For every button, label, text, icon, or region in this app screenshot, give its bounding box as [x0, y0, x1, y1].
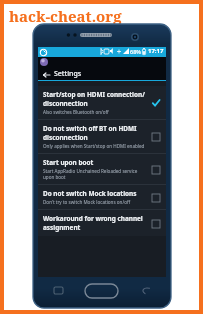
staticText: Settings — [54, 69, 82, 79]
button[interactable]: Checked — [149, 96, 162, 109]
button[interactable]: Unchecked — [149, 191, 162, 204]
button[interactable]: Start upon boot — [38, 154, 166, 184]
button[interactable]: Recent apps — [49, 284, 67, 297]
staticText: hack-cheat.org — [9, 6, 122, 26]
staticText: Only applies when Start/stop on HDMI ena… — [43, 143, 145, 149]
button[interactable]: Unchecked — [149, 217, 162, 230]
button[interactable]: Workaround for wrong channel assignment — [38, 210, 166, 236]
button[interactable]: Unchecked — [149, 163, 162, 176]
staticText: Start/stop on HDMI connection/disconnect… — [43, 90, 145, 108]
button[interactable]: Navigate up — [41, 69, 52, 80]
button[interactable]: Unchecked — [149, 130, 162, 143]
staticText: Do not switch off BT on HDMI disconnecti… — [43, 124, 145, 142]
button[interactable]: Start/stop on HDMI connection/disconnect… — [38, 86, 166, 119]
button[interactable]: Back — [136, 284, 154, 297]
staticText: Start upon boot — [43, 158, 94, 167]
staticText: Workaround for wrong channel assignment — [43, 214, 145, 232]
staticText: Start AppRadio Unchained Reloaded servic… — [43, 168, 145, 180]
button[interactable]: Do not switch Mock locations — [38, 185, 166, 209]
button[interactable]: Do not switch off BT on HDMI disconnecti… — [38, 120, 166, 153]
button[interactable]: Home — [85, 284, 118, 298]
staticText: 68% — [130, 48, 141, 55]
staticText: 17:17 — [148, 47, 164, 55]
staticText: Also switches Bluetooth on/off — [43, 109, 109, 115]
staticText: Do not switch Mock locations — [43, 189, 137, 198]
staticText: Don't try to switch Mock locations on/of… — [43, 199, 131, 205]
